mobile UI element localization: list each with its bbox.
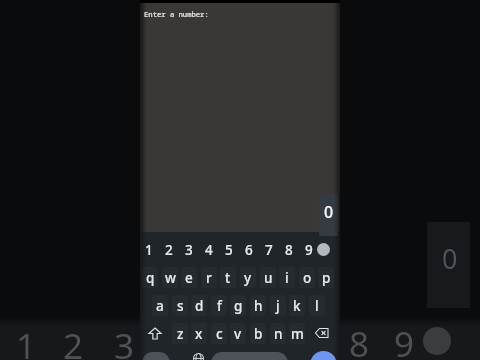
button[interactable]: k — [287, 292, 307, 319]
staticText: k — [293, 297, 301, 315]
button[interactable]: 2 — [159, 236, 179, 264]
button[interactable]: 9 — [299, 236, 319, 264]
staticText: 1 — [16, 322, 37, 360]
staticText: p — [322, 269, 331, 287]
staticText: f — [217, 297, 222, 315]
staticText: l — [315, 297, 319, 315]
button[interactable] — [312, 322, 332, 344]
button[interactable] — [192, 352, 204, 360]
staticText: o — [303, 269, 312, 287]
button[interactable]: 7 — [259, 236, 279, 264]
button[interactable]: 4 — [199, 236, 219, 264]
staticText: w — [165, 269, 176, 287]
staticText: z — [177, 325, 184, 343]
button[interactable]: v — [228, 320, 248, 347]
staticText: m — [291, 325, 304, 343]
button[interactable]: e — [179, 264, 199, 291]
button[interactable]: h — [248, 292, 268, 319]
staticText: 1 — [145, 241, 153, 259]
button[interactable]: c — [209, 320, 229, 347]
staticText: e — [185, 269, 193, 287]
staticText: 6 — [245, 241, 253, 259]
staticText: 3 — [114, 322, 135, 360]
staticText: 4 — [205, 241, 213, 259]
button[interactable]: 5 — [219, 236, 239, 264]
staticText: q — [146, 269, 155, 287]
button[interactable]: j — [268, 292, 288, 319]
button[interactable]: 6 — [239, 236, 259, 264]
staticText: s — [177, 297, 184, 315]
staticText: h — [254, 297, 263, 315]
button[interactable]: x — [189, 320, 209, 347]
staticText: y — [244, 269, 252, 287]
button[interactable]: n — [268, 320, 288, 347]
staticText: v — [234, 325, 242, 343]
staticText: 8 — [349, 320, 370, 360]
staticText: i — [285, 269, 289, 287]
button[interactable] — [317, 243, 330, 256]
button[interactable]: s — [170, 292, 190, 319]
button[interactable]: d — [189, 292, 209, 319]
staticText: 2 — [165, 241, 173, 259]
button[interactable]: Enter a number: — [137, 8, 216, 20]
staticText: b — [254, 325, 263, 343]
button[interactable]: English (US) — [211, 352, 288, 360]
button[interactable]: p — [316, 264, 336, 291]
staticText: t — [225, 269, 231, 287]
button[interactable]: ?123 — [142, 352, 170, 360]
button[interactable]: f — [209, 292, 229, 319]
button[interactable]: b — [248, 320, 268, 347]
staticText: 7 — [265, 241, 273, 259]
button[interactable]: i — [277, 264, 297, 291]
staticText: u — [264, 269, 273, 287]
staticText: c — [216, 325, 223, 343]
staticText: 8 — [285, 241, 293, 259]
button[interactable]: y — [238, 264, 258, 291]
button[interactable] — [145, 322, 165, 344]
staticText: Enter a number: — [144, 9, 209, 19]
button[interactable]: 3 — [179, 236, 199, 264]
staticText: 9 — [394, 320, 415, 360]
button[interactable]: l — [307, 292, 327, 319]
staticText: g — [234, 297, 243, 315]
staticText: 0 — [442, 240, 458, 277]
button[interactable] — [140, 232, 340, 360]
staticText: 2 — [63, 322, 84, 360]
staticText: r — [206, 269, 212, 287]
button[interactable]: o — [297, 264, 317, 291]
staticText: a — [156, 297, 164, 315]
button[interactable]: w — [160, 264, 180, 291]
button[interactable]: q — [140, 264, 160, 291]
staticText: 5 — [225, 241, 233, 259]
button[interactable]: z — [170, 320, 190, 347]
button[interactable]: g — [228, 292, 248, 319]
button[interactable]: 1 — [139, 236, 159, 264]
staticText: 9 — [305, 241, 313, 259]
button[interactable] — [310, 351, 337, 360]
staticText: 3 — [185, 241, 193, 259]
button[interactable]: m — [287, 320, 307, 347]
button[interactable]: t — [218, 264, 238, 291]
button[interactable]: u — [258, 264, 278, 291]
staticText: d — [195, 297, 204, 315]
button[interactable]: a — [150, 292, 170, 319]
staticText: j — [276, 297, 280, 315]
staticText: x — [195, 325, 203, 343]
staticText: 0 — [324, 201, 334, 223]
button[interactable]: 8 — [279, 236, 299, 264]
staticText: n — [274, 325, 283, 343]
button[interactable]: r — [199, 264, 219, 291]
